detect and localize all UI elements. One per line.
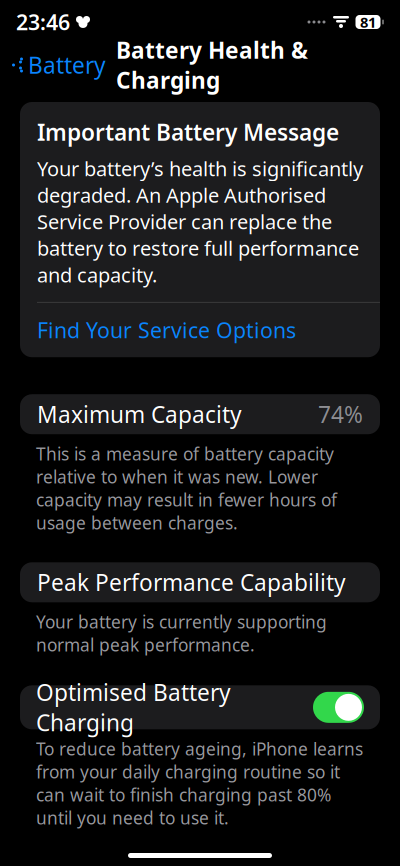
button[interactable]: Optimised Battery Charging (20, 685, 380, 729)
staticText: Optimised Battery Charging (36, 677, 231, 737)
staticText: Find Your Service Options (37, 316, 296, 344)
staticText: Peak Performance Capability (37, 567, 346, 597)
staticText: 81 (360, 12, 376, 32)
staticText: Maximum Capacity (37, 399, 242, 429)
staticText: This is a measure of battery capacity re… (36, 442, 337, 534)
staticText: Battery (28, 50, 106, 80)
button[interactable]: Find Your Service Options (20, 303, 380, 357)
staticText: To reduce battery ageing, iPhone learns … (36, 737, 363, 829)
staticText: 74% (318, 399, 363, 429)
staticText: Your battery’s health is significantly d… (37, 155, 363, 288)
staticText: 23:46 (16, 8, 70, 36)
button[interactable]: Maximum Capacity (20, 394, 380, 434)
staticText: Your battery is currently supporting nor… (36, 610, 327, 656)
staticText: Important Battery Message (37, 117, 339, 147)
staticText: Battery Health & Charging (116, 35, 308, 95)
button[interactable]: Back to Battery (0, 43, 116, 87)
